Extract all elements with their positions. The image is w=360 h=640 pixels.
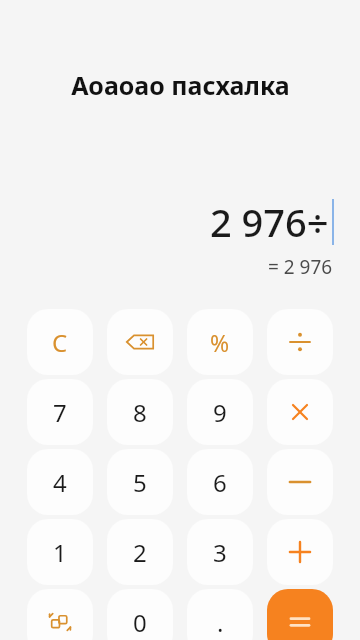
button[interactable]: Equals [267, 589, 333, 640]
button[interactable]: Minus [267, 449, 333, 515]
staticText: 1 [53, 536, 67, 569]
button[interactable]: 3 [187, 519, 253, 585]
button[interactable]: 8 [107, 379, 173, 445]
staticText: 7 [53, 396, 67, 429]
button[interactable]: Unit converter [27, 589, 93, 640]
staticText: % [210, 327, 230, 358]
button[interactable]: 6 [187, 449, 253, 515]
staticText: Аоаоао пасхалка [71, 68, 290, 102]
staticText: 6 [213, 466, 227, 499]
staticText: = 2 976 [268, 254, 333, 280]
staticText: 2 976÷ [210, 196, 329, 248]
button[interactable]: 1 [27, 519, 93, 585]
button[interactable]: C [27, 309, 93, 375]
button[interactable]: 9 [187, 379, 253, 445]
staticText: 9 [213, 396, 227, 429]
button[interactable]: 7 [27, 379, 93, 445]
staticText: 8 [133, 396, 147, 429]
button[interactable]: . [187, 589, 253, 640]
button[interactable]: Divide [267, 309, 333, 375]
button[interactable]: 0 [107, 589, 173, 640]
staticText: C [52, 326, 68, 359]
button[interactable]: Multiply [267, 379, 333, 445]
button[interactable]: 5 [107, 449, 173, 515]
staticText: 3 [213, 536, 227, 569]
button[interactable]: 4 [27, 449, 93, 515]
button[interactable]: % [187, 309, 253, 375]
button[interactable]: Plus [267, 519, 333, 585]
staticText: 0 [133, 606, 147, 639]
staticText: 4 [53, 466, 67, 499]
staticText: . [217, 606, 224, 639]
button[interactable]: Backspace [107, 309, 173, 375]
staticText: 5 [133, 466, 147, 499]
button[interactable]: 2 [107, 519, 173, 585]
staticText: 2 [133, 536, 147, 569]
